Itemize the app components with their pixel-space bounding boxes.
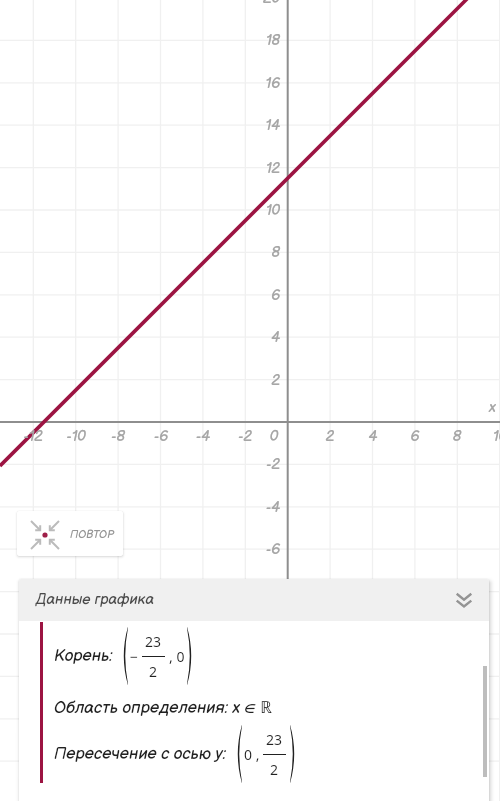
- staticText: 4: [252, 328, 280, 346]
- staticText: 2: [270, 760, 279, 779]
- staticText: -4: [252, 498, 280, 516]
- staticText: -4: [189, 427, 217, 445]
- staticText: Корень:: [54, 646, 113, 666]
- staticText: , 0: [169, 647, 185, 666]
- staticText: -6: [147, 427, 175, 445]
- staticText: -12: [19, 427, 47, 445]
- staticText: 6: [401, 427, 429, 445]
- staticText: Область определения: x ∈ ℝ: [54, 695, 272, 718]
- staticText: 4: [359, 427, 387, 445]
- staticText: 2: [149, 662, 158, 681]
- staticText: 14: [252, 116, 280, 134]
- staticText: -8: [104, 427, 132, 445]
- staticText: 10: [486, 427, 500, 445]
- staticText: -2: [231, 427, 259, 445]
- staticText: 20: [252, 0, 280, 7]
- other: Collapse panel: [452, 588, 476, 612]
- staticText: 2: [252, 371, 280, 389]
- staticText: -6: [252, 540, 280, 558]
- staticText: 10: [252, 201, 280, 219]
- staticText: 23: [145, 632, 162, 651]
- staticText: 8: [443, 427, 471, 445]
- staticText: Пересечение с осью y:: [54, 744, 227, 764]
- staticText: -10: [62, 427, 90, 445]
- staticText: x: [489, 398, 497, 416]
- staticText: 12: [252, 159, 280, 177]
- staticText: 0 ,: [244, 745, 260, 764]
- staticText: 8: [252, 243, 280, 261]
- staticText: Данные графика: [36, 591, 155, 609]
- staticText: ПОВТОР: [70, 528, 114, 541]
- staticText: −: [130, 647, 139, 666]
- staticText: 0: [267, 427, 281, 445]
- staticText: 23: [266, 730, 283, 749]
- button[interactable]: Данные графика: [19, 579, 489, 621]
- staticText: 18: [252, 31, 280, 49]
- staticText: -2: [252, 455, 280, 473]
- staticText: 16: [252, 74, 280, 92]
- staticText: 6: [252, 286, 280, 304]
- staticText: 2: [316, 427, 344, 445]
- button[interactable]: ПОВТОР: [17, 511, 123, 556]
